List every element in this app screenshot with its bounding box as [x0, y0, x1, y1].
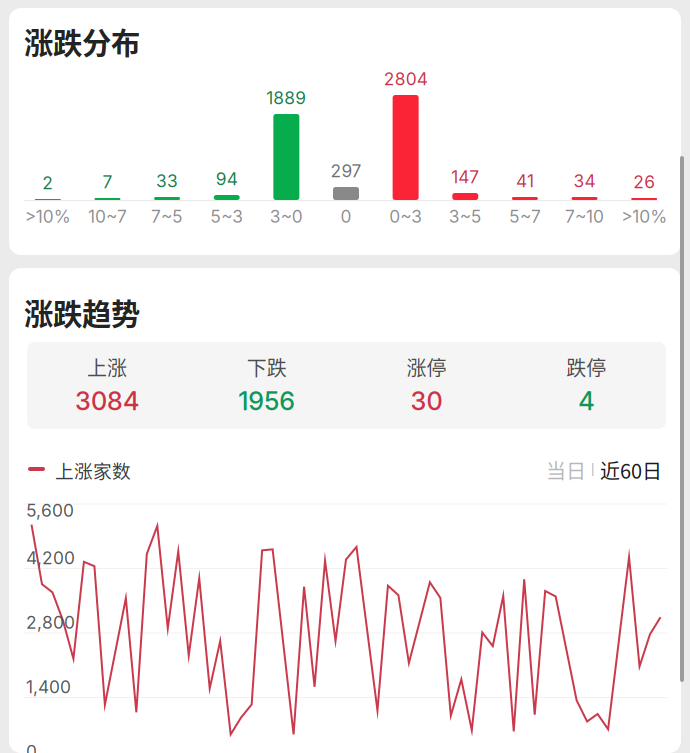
staticText: 跌停	[566, 352, 606, 381]
staticText: 3~0	[270, 206, 303, 227]
staticText: 4,200	[26, 547, 75, 568]
staticText: 3~5	[449, 206, 482, 227]
staticText: 近60日	[600, 455, 662, 484]
staticText: 5,600	[26, 500, 74, 521]
staticText: 0	[26, 741, 37, 753]
staticText: 297	[330, 160, 361, 181]
staticText: 41	[516, 170, 534, 191]
staticText: 94	[216, 168, 238, 189]
staticText: 涨跌分布	[24, 20, 140, 62]
button[interactable]: 近60日	[0, 0, 70, 22]
staticText: 当日	[546, 455, 586, 484]
staticText: 2,800	[26, 612, 75, 633]
staticText: 0~3	[389, 206, 422, 227]
staticText: 5~7	[509, 206, 541, 227]
button[interactable]: 当日	[0, 0, 52, 22]
staticText: 2804	[384, 68, 428, 89]
staticText: 3084	[75, 386, 139, 416]
staticText: 26	[633, 171, 655, 192]
staticText: 30	[410, 386, 442, 416]
staticText: 上涨	[87, 352, 127, 381]
staticText: 涨停	[406, 352, 446, 381]
staticText: 0	[340, 206, 351, 227]
staticText: 涨跌趋势	[24, 291, 140, 333]
staticText: 下跌	[247, 352, 287, 381]
staticText: 7~10	[565, 206, 604, 227]
staticText: 1956	[238, 386, 295, 416]
staticText: 1889	[266, 87, 306, 108]
staticText: 34	[573, 170, 595, 191]
staticText: 10~7	[88, 206, 127, 227]
staticText: 7~5	[151, 206, 183, 227]
staticText: 33	[156, 170, 178, 191]
staticText: 5~3	[210, 206, 243, 227]
staticText: 1,400	[26, 676, 71, 697]
staticText: >10%	[621, 206, 667, 227]
staticText: 7	[102, 171, 112, 192]
staticText: 147	[451, 166, 479, 187]
staticText: >10%	[25, 206, 71, 227]
staticText: 2	[42, 172, 53, 193]
staticText: 4	[578, 386, 594, 416]
staticText: 上涨家数	[55, 456, 131, 483]
